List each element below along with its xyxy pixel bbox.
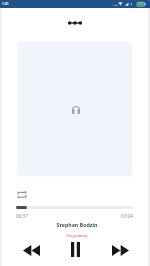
button[interactable]: Pause [64,238,86,260]
staticText: Singularity [2,232,150,238]
staticText: 00:37 [16,213,28,219]
button[interactable]: Next track [109,240,131,260]
button[interactable]: Album artwork [17,41,133,177]
staticText: 07:04 [121,213,133,219]
staticText: 1:30 [2,2,9,6]
button[interactable]: Previous track [20,240,42,260]
button[interactable]: Repeat [15,188,29,201]
button[interactable]: Seek bar [16,204,133,211]
staticText: Stephan Bodzin [2,221,150,228]
button[interactable]: More options [65,16,85,29]
